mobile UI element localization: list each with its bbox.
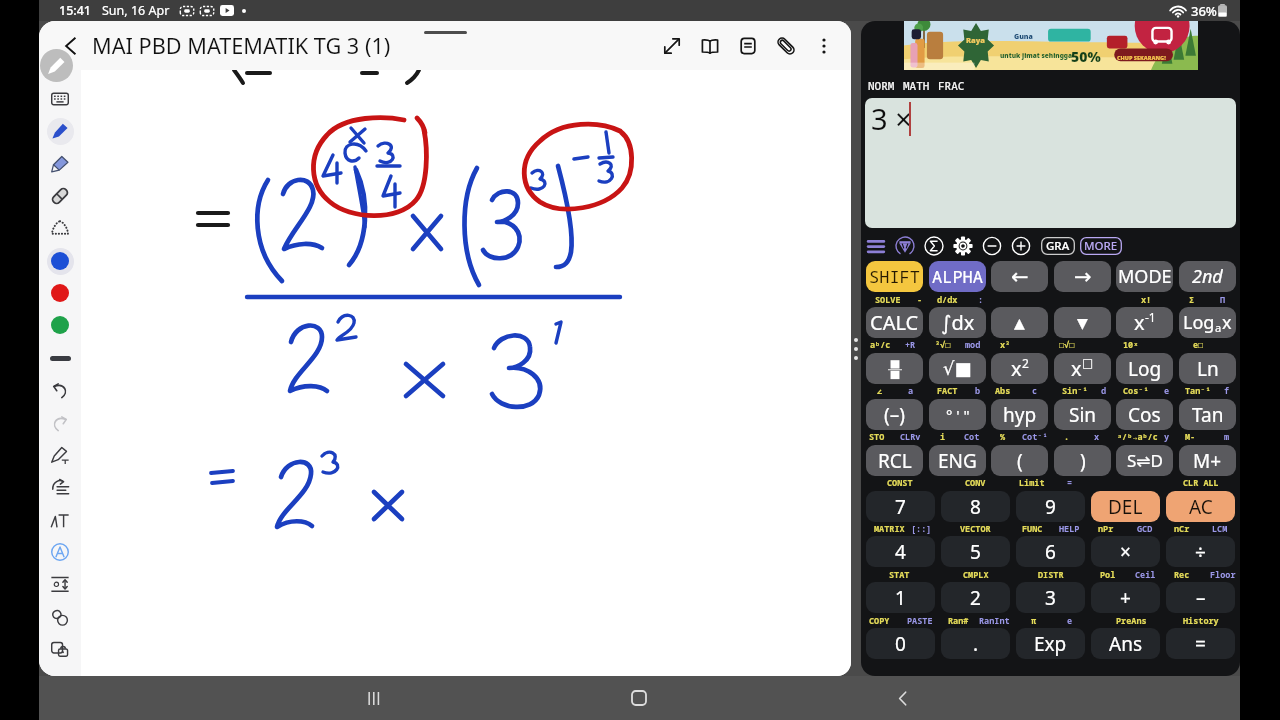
button[interactable]: Lock <box>39 634 81 664</box>
button[interactable]: MORE <box>1080 237 1122 255</box>
button[interactable]: Keyboard <box>39 84 81 114</box>
button[interactable]: hyp <box>991 399 1048 430</box>
button[interactable]: Eraser <box>39 181 81 211</box>
button[interactable]: 9 <box>1016 491 1085 522</box>
button[interactable]: 8 <box>941 491 1010 522</box>
button[interactable]: – <box>1166 582 1235 613</box>
button[interactable]: DEL <box>1091 491 1160 522</box>
staticText: Abs <box>995 385 1011 397</box>
staticText: ▼ <box>1077 315 1088 331</box>
button[interactable]: × <box>1091 536 1160 567</box>
button[interactable]: SHIFT <box>866 261 923 292</box>
button[interactable]: ENG <box>929 445 986 476</box>
staticText: Sun, 16 Apr <box>102 2 170 19</box>
button[interactable]: Resize split <box>851 21 861 676</box>
button[interactable]: Attach <box>767 27 805 65</box>
button[interactable]: 1 <box>866 582 935 613</box>
button[interactable]: Log <box>1116 353 1173 384</box>
button[interactable]: = <box>1166 628 1235 659</box>
button[interactable]: ALPHA <box>929 261 986 292</box>
button[interactable]: Zoom out <box>982 236 1002 256</box>
button[interactable]: Tan <box>1179 399 1236 430</box>
button[interactable]: ) <box>1054 445 1111 476</box>
staticText: Ceil <box>1135 569 1156 581</box>
button[interactable]: Advertisement <box>904 21 1198 70</box>
staticText: 3 <box>1045 585 1056 611</box>
button[interactable]: Highlighter <box>39 149 81 179</box>
button[interactable]: Sum <box>924 236 944 256</box>
button[interactable]: Cos <box>1116 399 1173 430</box>
button[interactable]: Blue <box>39 246 81 276</box>
button[interactable]: Text spacing <box>39 569 81 599</box>
button[interactable]: S⇌D <box>1116 445 1173 476</box>
button[interactable]: ∫dx <box>929 307 986 338</box>
button[interactable]: Sin <box>1054 399 1111 430</box>
button[interactable]: Shapes <box>39 602 81 632</box>
button[interactable] <box>866 353 923 384</box>
button[interactable]: Undo <box>39 375 81 405</box>
button[interactable]: 2 <box>941 582 1010 613</box>
button[interactable]: Settings <box>953 236 973 256</box>
button[interactable]: Ln <box>1179 353 1236 384</box>
button[interactable]: Ans <box>1091 628 1160 659</box>
button[interactable]: Stroke width <box>39 343 81 373</box>
button[interactable]: Back <box>882 678 922 718</box>
button[interactable]: Align <box>39 472 81 502</box>
button[interactable]: Recents <box>354 678 394 718</box>
button[interactable]: Note list <box>729 27 767 65</box>
button[interactable]: Green <box>39 310 81 340</box>
button[interactable]: Handwriting to text <box>39 537 81 567</box>
button[interactable]: Pen tool <box>40 49 73 82</box>
button[interactable]: Menu <box>866 236 886 256</box>
button[interactable]: √■ <box>929 353 986 384</box>
button[interactable]: 5 <box>941 536 1010 567</box>
button[interactable]: Exp <box>1016 628 1085 659</box>
button[interactable]: Expand <box>653 27 691 65</box>
button[interactable]: Zoom in <box>1011 236 1031 256</box>
button[interactable]: M+ <box>1179 445 1236 476</box>
button[interactable]: CALC <box>866 307 923 338</box>
button[interactable]: → <box>1054 261 1111 292</box>
button[interactable]: 3 <box>1016 582 1085 613</box>
button[interactable]: ° ' " <box>929 399 986 430</box>
button[interactable]: . <box>941 628 1010 659</box>
button[interactable]: ( <box>991 445 1048 476</box>
staticText: DISTR <box>1038 569 1064 581</box>
button[interactable]: GRA <box>1041 237 1075 255</box>
button[interactable]: MODE <box>1116 261 1173 292</box>
button[interactable]: RCL <box>866 445 923 476</box>
button[interactable]: 0 <box>866 628 935 659</box>
button[interactable]: Red <box>39 278 81 308</box>
button[interactable]: ← <box>991 261 1048 292</box>
button[interactable]: More options <box>805 27 843 65</box>
button[interactable]: AC <box>1166 491 1235 522</box>
button[interactable]: Log <box>1179 307 1236 338</box>
button[interactable]: Redo <box>39 408 81 438</box>
button[interactable]: ▲ <box>991 307 1048 338</box>
button[interactable]: x <box>1116 307 1173 338</box>
button[interactable]: 4 <box>866 536 935 567</box>
staticText: – <box>1196 585 1206 611</box>
button[interactable]: 7 <box>866 491 935 522</box>
button[interactable]: Select <box>39 213 81 243</box>
button[interactable]: 2nd <box>1179 261 1236 292</box>
button[interactable]: Home <box>619 678 659 718</box>
button[interactable]: + <box>1091 582 1160 613</box>
button[interactable]: (–) <box>866 399 923 430</box>
button[interactable]: Premium <box>895 236 915 256</box>
button[interactable]: 6 <box>1016 536 1085 567</box>
button[interactable]: Pen <box>39 116 81 146</box>
button[interactable]: x <box>1054 353 1111 384</box>
button[interactable]: ÷ <box>1166 536 1235 567</box>
button[interactable]: 3 × <box>865 98 1236 228</box>
staticText: untuk jimat sehingga <box>1000 51 1073 60</box>
button[interactable]: Back <box>53 29 87 63</box>
staticText: ( <box>1017 448 1023 474</box>
button[interactable]: Reading mode <box>691 27 729 65</box>
button[interactable]: Pen settings <box>39 440 81 470</box>
button[interactable]: ▼ <box>1054 307 1111 338</box>
staticText: S⇌D <box>1127 449 1163 472</box>
staticText: i <box>940 431 946 443</box>
button[interactable]: x <box>991 353 1048 384</box>
button[interactable]: Text style <box>39 505 81 535</box>
